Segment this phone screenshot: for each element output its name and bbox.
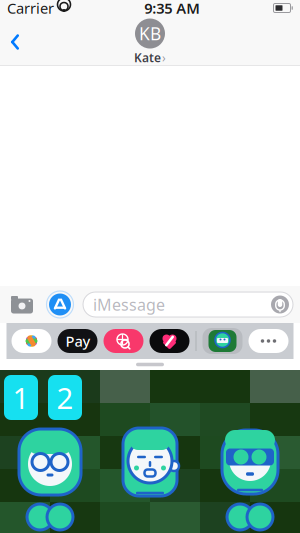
button[interactable]: Sticker pack [202, 328, 242, 354]
staticText: KB [139, 22, 161, 45]
button[interactable]: 2 [48, 375, 82, 420]
button[interactable]: Kate, contact details [110, 18, 190, 66]
staticText: 1 [12, 378, 29, 417]
staticText: iMessage [93, 294, 165, 315]
staticText: Carrier [7, 0, 54, 18]
button[interactable]: 1 [4, 375, 38, 420]
button[interactable]: iMessage text field [83, 292, 293, 317]
button[interactable]: More apps [248, 329, 288, 353]
staticText: 9:35 AM [144, 0, 200, 18]
button[interactable]: App Store [45, 289, 75, 319]
button[interactable]: Sticker: girl with glasses [0, 422, 100, 502]
button[interactable]: Back [0, 22, 30, 62]
button[interactable]: Digital Touch [149, 329, 189, 353]
staticText: Pay [65, 331, 90, 351]
staticText: 2 [56, 378, 73, 417]
button[interactable]: Camera [7, 289, 37, 319]
staticText: Kate [134, 49, 161, 65]
button[interactable]: Apple Pay [57, 329, 97, 353]
button[interactable]: Sticker: girl with sunglasses [200, 422, 300, 502]
button[interactable]: Images [103, 329, 143, 353]
staticText: › [162, 49, 166, 65]
button[interactable]: Photos [11, 329, 51, 353]
button[interactable]: Sticker: smiling girl [100, 422, 200, 502]
